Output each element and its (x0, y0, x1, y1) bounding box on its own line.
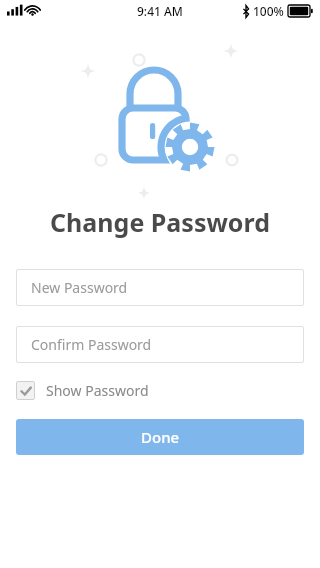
button[interactable]: Show Password (16, 381, 149, 400)
staticText: Change Password (50, 205, 270, 239)
staticText: Done (141, 427, 180, 447)
button[interactable]: Confirm Password (16, 326, 304, 363)
staticText: 9:41 AM (137, 3, 183, 19)
staticText: Show Password (46, 381, 149, 400)
staticText: Confirm Password (31, 335, 152, 354)
staticText: 100% (253, 3, 284, 19)
button[interactable]: Done (16, 419, 304, 455)
button[interactable]: New Password (16, 269, 304, 306)
staticText: New Password (31, 278, 128, 297)
